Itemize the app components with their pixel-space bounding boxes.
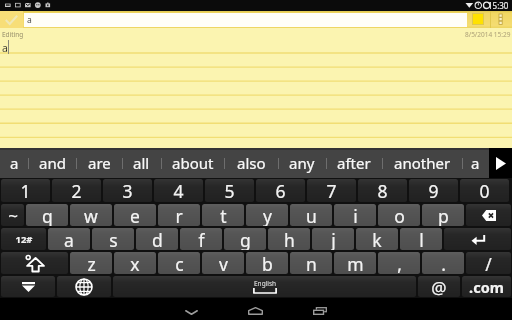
- button[interactable]: Hide keyboard: [0, 275, 56, 298]
- staticText: x: [130, 252, 140, 274]
- staticText: z: [87, 252, 96, 274]
- button[interactable]: r: [157, 203, 201, 227]
- button[interactable]: 3: [102, 178, 153, 203]
- button[interactable]: also: [224, 148, 278, 178]
- button[interactable]: Enter: [443, 227, 512, 251]
- staticText: 8: [377, 179, 388, 202]
- button[interactable]: Hide keyboard: [171, 298, 211, 320]
- button[interactable]: a: [24, 13, 467, 27]
- button[interactable]: about: [161, 148, 225, 178]
- button[interactable]: @: [417, 275, 461, 298]
- staticText: 7: [326, 179, 337, 202]
- button[interactable]: j: [311, 227, 355, 251]
- button[interactable]: y: [245, 203, 289, 227]
- button[interactable]: v: [201, 251, 245, 275]
- button[interactable]: c: [157, 251, 201, 275]
- button[interactable]: d: [135, 227, 179, 251]
- staticText: b: [262, 252, 273, 274]
- button[interactable]: o: [377, 203, 421, 227]
- button[interactable]: Recent apps: [300, 298, 340, 320]
- button[interactable]: another: [382, 148, 462, 178]
- button[interactable]: Home: [235, 298, 275, 320]
- button[interactable]: n: [289, 251, 333, 275]
- staticText: /: [485, 252, 492, 274]
- button[interactable]: ,: [377, 251, 421, 275]
- button[interactable]: More suggestions: [489, 148, 512, 178]
- button[interactable]: t: [201, 203, 245, 227]
- button[interactable]: u: [289, 203, 333, 227]
- button[interactable]: ~: [0, 203, 25, 227]
- staticText: 6: [275, 179, 286, 202]
- button[interactable]: any: [278, 148, 326, 178]
- button[interactable]: s: [91, 227, 135, 251]
- button[interactable]: Shift: [0, 251, 69, 275]
- staticText: w: [84, 204, 98, 226]
- staticText: 3: [122, 179, 133, 202]
- button[interactable]: k: [355, 227, 399, 251]
- button[interactable]: g: [223, 227, 267, 251]
- button[interactable]: 6: [255, 178, 306, 203]
- staticText: after: [337, 153, 371, 173]
- staticText: ~: [8, 204, 18, 226]
- button[interactable]: a: [0, 148, 28, 178]
- button[interactable]: 7: [306, 178, 357, 203]
- staticText: a: [64, 228, 74, 250]
- staticText: j: [331, 228, 336, 250]
- button[interactable]: q: [25, 203, 69, 227]
- button[interactable]: b: [245, 251, 289, 275]
- button[interactable]: .: [421, 251, 465, 275]
- staticText: a: [27, 14, 32, 26]
- button[interactable]: after: [326, 148, 382, 178]
- staticText: are: [88, 153, 111, 173]
- button[interactable]: p: [421, 203, 465, 227]
- button[interactable]: are: [76, 148, 122, 178]
- button[interactable]: /: [465, 251, 512, 275]
- button[interactable]: and: [28, 148, 76, 178]
- staticText: 0: [479, 179, 490, 202]
- button[interactable]: 1: [0, 178, 51, 203]
- staticText: f: [198, 228, 205, 250]
- button[interactable]: 0: [459, 178, 510, 203]
- button[interactable]: 5: [204, 178, 255, 203]
- staticText: g: [240, 228, 251, 250]
- staticText: e: [130, 204, 140, 226]
- button[interactable]: 9: [408, 178, 459, 203]
- staticText: 4: [173, 179, 184, 202]
- button[interactable]: m: [333, 251, 377, 275]
- staticText: 1: [20, 179, 31, 202]
- button[interactable]: a: [462, 148, 489, 178]
- button[interactable]: l: [399, 227, 443, 251]
- staticText: @: [431, 276, 447, 297]
- staticText: q: [42, 204, 53, 226]
- staticText: 12#: [15, 233, 33, 246]
- button[interactable]: Save note: [0, 11, 23, 28]
- staticText: n: [306, 252, 317, 274]
- button[interactable]: h: [267, 227, 311, 251]
- button[interactable]: w: [69, 203, 113, 227]
- staticText: r: [175, 204, 183, 226]
- staticText: a: [10, 153, 19, 173]
- button[interactable]: 2: [51, 178, 102, 203]
- staticText: p: [438, 204, 449, 226]
- staticText: c: [175, 252, 184, 274]
- button[interactable]: i: [333, 203, 377, 227]
- button[interactable]: x: [113, 251, 157, 275]
- button[interactable]: 12#: [0, 227, 47, 251]
- button[interactable]: Backspace: [465, 203, 512, 227]
- button[interactable]: all: [122, 148, 161, 178]
- staticText: ,: [397, 252, 402, 274]
- button[interactable]: a: [47, 227, 91, 251]
- button[interactable]: e: [113, 203, 157, 227]
- button[interactable]: .com: [461, 275, 512, 298]
- staticText: k: [372, 228, 382, 250]
- button[interactable]: More options: [492, 11, 512, 28]
- button[interactable]: Space: [112, 275, 417, 298]
- button[interactable]: 4: [153, 178, 204, 203]
- button[interactable]: z: [69, 251, 113, 275]
- staticText: l: [419, 228, 424, 250]
- staticText: v: [219, 252, 228, 274]
- button[interactable]: 8: [357, 178, 408, 203]
- button[interactable]: Change input language: [56, 275, 112, 298]
- button[interactable]: f: [179, 227, 223, 251]
